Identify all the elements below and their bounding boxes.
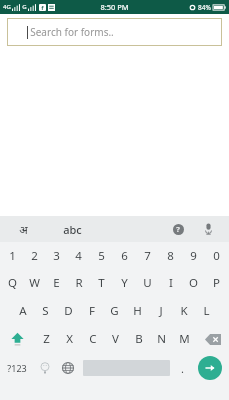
- staticText: M: [179, 331, 190, 347]
- staticText: 1: [9, 248, 16, 264]
- button[interactable]: abc: [46, 216, 98, 242]
- staticText: K: [180, 303, 188, 319]
- staticText: 7: [144, 248, 151, 264]
- staticText: V: [112, 331, 119, 347]
- button[interactable]: L: [195, 297, 218, 325]
- button[interactable]: 2: [23, 242, 45, 269]
- staticText: X: [66, 331, 73, 347]
- staticText: G: [22, 3, 27, 11]
- staticText: ?: [176, 224, 180, 234]
- button[interactable]: 5: [90, 242, 113, 269]
- button[interactable]: Y: [113, 269, 136, 297]
- button[interactable]: G: [103, 297, 126, 325]
- staticText: B: [135, 331, 143, 347]
- button[interactable]: 0: [205, 242, 228, 269]
- staticText: .: [181, 361, 184, 376]
- staticText: P: [213, 275, 220, 291]
- staticText: अ: [19, 222, 28, 237]
- button[interactable]: D: [57, 297, 80, 325]
- button[interactable]: U: [136, 269, 159, 297]
- staticText: 0: [213, 248, 220, 264]
- button[interactable]: R: [67, 269, 90, 297]
- staticText: ?123: [7, 362, 27, 374]
- button[interactable]: I: [159, 269, 182, 297]
- staticText: O: [189, 275, 198, 291]
- button[interactable]: A: [11, 297, 34, 325]
- button[interactable]: 8: [159, 242, 182, 269]
- staticText: f: [41, 4, 44, 11]
- staticText: E: [53, 275, 60, 291]
- button[interactable]: Change language: [56, 353, 80, 383]
- staticText: 4: [75, 248, 82, 264]
- button[interactable]: Help: [163, 216, 193, 242]
- staticText: H: [133, 303, 142, 319]
- button[interactable]: T: [90, 269, 113, 297]
- staticText: T: [98, 275, 105, 291]
- button[interactable]: 4: [67, 242, 90, 269]
- staticText: J: [159, 303, 163, 319]
- button[interactable]: B: [127, 325, 150, 353]
- button[interactable]: O: [182, 269, 205, 297]
- button[interactable]: E: [45, 269, 67, 297]
- button[interactable]: H: [126, 297, 149, 325]
- staticText: Y: [121, 275, 128, 291]
- staticText: C: [89, 331, 97, 347]
- staticText: Search for forms..: [30, 25, 114, 39]
- staticText: 8:50 PM: [100, 2, 129, 12]
- staticText: D: [64, 303, 73, 319]
- staticText: G: [110, 303, 119, 319]
- staticText: A: [19, 303, 27, 319]
- button[interactable]: Backspace: [196, 325, 229, 353]
- staticText: R: [75, 275, 83, 291]
- button[interactable]: N: [150, 325, 173, 353]
- button[interactable]: Shift: [0, 325, 34, 353]
- staticText: Q: [8, 275, 17, 291]
- staticText: 4G: [3, 3, 11, 11]
- button[interactable]: Voice input: [193, 216, 223, 242]
- staticText: U: [143, 275, 152, 291]
- button[interactable]: S: [34, 297, 57, 325]
- staticText: 2: [31, 248, 38, 264]
- staticText: 6: [121, 248, 128, 264]
- staticText: 84%: [198, 3, 211, 12]
- button[interactable]: P: [205, 269, 228, 297]
- button[interactable]: 7: [136, 242, 159, 269]
- staticText: abc: [63, 222, 82, 237]
- button[interactable]: Z: [34, 325, 58, 353]
- button[interactable]: Q: [1, 269, 23, 297]
- staticText: Z: [43, 331, 50, 347]
- staticText: N: [157, 331, 166, 347]
- button[interactable]: C: [81, 325, 104, 353]
- button[interactable]: 3: [45, 242, 67, 269]
- staticText: W: [29, 275, 40, 291]
- button[interactable]: 9: [182, 242, 205, 269]
- button[interactable]: Emoji: [34, 353, 56, 383]
- button[interactable]: Enter: [191, 353, 229, 383]
- button[interactable]: X: [58, 325, 81, 353]
- button[interactable]: अ: [0, 216, 46, 242]
- button[interactable]: M: [173, 325, 196, 353]
- button[interactable]: F: [80, 297, 103, 325]
- staticText: 3: [53, 248, 60, 264]
- button[interactable]: 1: [1, 242, 23, 269]
- staticText: 8: [167, 248, 174, 264]
- button[interactable]: K: [172, 297, 195, 325]
- button[interactable]: W: [23, 269, 45, 297]
- staticText: 5: [98, 248, 105, 264]
- staticText: I: [169, 275, 173, 291]
- staticText: S: [42, 303, 49, 319]
- staticText: 9: [190, 248, 197, 264]
- button[interactable]: J: [149, 297, 172, 325]
- button[interactable]: ?123: [0, 353, 34, 383]
- button[interactable]: 6: [113, 242, 136, 269]
- staticText: L: [203, 303, 210, 319]
- button[interactable]: V: [104, 325, 127, 353]
- button[interactable]: Search for forms..: [7, 18, 222, 46]
- staticText: F: [89, 303, 95, 319]
- button[interactable]: .: [173, 353, 191, 383]
